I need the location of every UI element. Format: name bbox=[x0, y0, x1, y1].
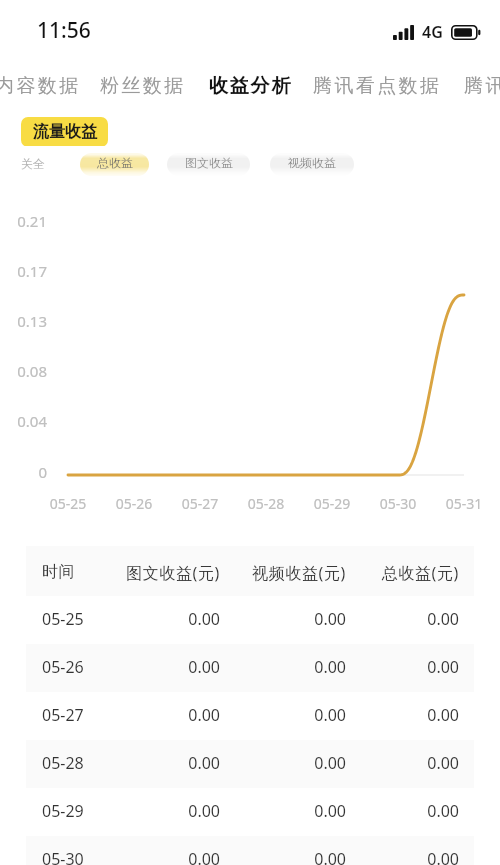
staticText: 腾讯看点数据 bbox=[313, 74, 442, 98]
staticText: 05-26 bbox=[99, 494, 169, 513]
staticText: 05-29 bbox=[42, 800, 84, 822]
staticText: 05-27 bbox=[165, 494, 235, 513]
staticText: 0.00 bbox=[99, 752, 220, 774]
staticText: 05-30 bbox=[363, 494, 433, 513]
button[interactable]: 腾讯看点 bbox=[458, 68, 500, 104]
button[interactable]: 收益分析 bbox=[203, 68, 299, 104]
staticText: 0.00 bbox=[99, 704, 220, 726]
staticText: 0.00 bbox=[338, 656, 459, 678]
staticText: 0.00 bbox=[225, 848, 346, 865]
staticText: 0.00 bbox=[99, 656, 220, 678]
staticText: 时间 bbox=[42, 562, 76, 582]
staticText: 关全 bbox=[21, 156, 45, 171]
staticText: 流量收益 bbox=[33, 122, 97, 142]
staticText: 0.00 bbox=[338, 752, 459, 774]
staticText: 05-25 bbox=[42, 608, 84, 630]
staticText: 腾讯看点 bbox=[464, 74, 500, 98]
button[interactable]: 腾讯看点数据 bbox=[307, 68, 448, 104]
staticText: 0.00 bbox=[338, 608, 459, 630]
staticText: 05-28 bbox=[231, 494, 301, 513]
staticText: 0.00 bbox=[225, 656, 346, 678]
staticText: 05-26 bbox=[42, 656, 84, 678]
button[interactable]: 流量收益 bbox=[21, 117, 108, 147]
staticText: 收益分析 bbox=[209, 74, 293, 98]
staticText: 0.00 bbox=[99, 608, 220, 630]
staticText: 0.00 bbox=[338, 704, 459, 726]
button[interactable]: 视频收益 bbox=[270, 153, 354, 176]
button[interactable]: 内容数据 bbox=[0, 68, 87, 104]
staticText: 0.00 bbox=[225, 704, 346, 726]
staticText: 0.04 bbox=[0, 411, 47, 431]
staticText: 0.00 bbox=[338, 800, 459, 822]
staticText: 视频收益(元) bbox=[225, 562, 346, 584]
staticText: 05-25 bbox=[33, 494, 103, 513]
staticText: 05-29 bbox=[297, 494, 367, 513]
staticText: 图文收益 bbox=[185, 155, 233, 170]
staticText: 0.21 bbox=[0, 211, 47, 231]
button[interactable]: 关全 bbox=[19, 156, 47, 171]
staticText: 0.00 bbox=[99, 848, 220, 865]
staticText: 0.17 bbox=[0, 261, 47, 281]
staticText: 0.08 bbox=[0, 361, 47, 381]
staticText: 05-30 bbox=[42, 848, 84, 865]
staticText: 0 bbox=[0, 462, 47, 482]
button[interactable]: 图文收益 bbox=[167, 153, 250, 176]
staticText: 11:56 bbox=[37, 16, 91, 45]
button[interactable]: 总收益 bbox=[80, 153, 149, 176]
staticText: 05-28 bbox=[42, 752, 84, 774]
staticText: 内容数据 bbox=[0, 74, 81, 98]
staticText: 总收益 bbox=[97, 155, 133, 170]
staticText: 05-31 bbox=[429, 494, 499, 513]
staticText: 0.00 bbox=[225, 608, 346, 630]
staticText: 4G bbox=[422, 21, 443, 43]
staticText: 0.00 bbox=[225, 752, 346, 774]
staticText: 图文收益(元) bbox=[99, 562, 220, 584]
staticText: 05-27 bbox=[42, 704, 84, 726]
staticText: 粉丝数据 bbox=[100, 74, 186, 98]
staticText: 总收益(元) bbox=[338, 562, 459, 584]
staticText: 视频收益 bbox=[288, 155, 336, 170]
staticText: 0.00 bbox=[99, 800, 220, 822]
button[interactable]: 粉丝数据 bbox=[94, 68, 192, 104]
staticText: 0.00 bbox=[225, 800, 346, 822]
staticText: 0.13 bbox=[0, 311, 47, 331]
staticText: 0.00 bbox=[338, 848, 459, 865]
